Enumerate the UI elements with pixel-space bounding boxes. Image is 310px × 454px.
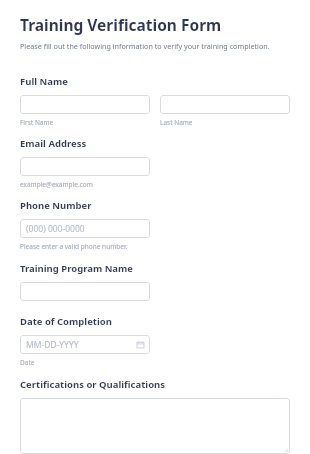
button[interactable] (20, 282, 150, 301)
staticText: Phone Number (20, 199, 92, 212)
staticText: Training Program Name (20, 262, 133, 275)
staticText: Last Name (160, 118, 193, 127)
button[interactable] (20, 398, 290, 454)
staticText: Please enter a valid phone number. (20, 242, 128, 251)
button[interactable]: MM-DD-YYYY (20, 335, 150, 354)
staticText: MM-DD-YYYY (26, 339, 79, 351)
staticText: Email Address (20, 137, 87, 150)
staticText: Please fill out the following informatio… (20, 41, 270, 51)
other: Pick date (137, 341, 144, 348)
staticText: Date of Completion (20, 315, 112, 328)
button[interactable] (160, 95, 290, 114)
staticText: Date (20, 358, 35, 367)
staticText: Training Verification Form (20, 14, 222, 35)
staticText: Certifications or Qualifications (20, 378, 166, 391)
staticText: example@example.com (20, 180, 93, 189)
button[interactable] (20, 95, 150, 114)
button[interactable]: (000) 000-0000 (20, 219, 150, 238)
staticText: (000) 000-0000 (26, 223, 85, 235)
staticText: First Name (20, 118, 54, 127)
button[interactable] (20, 157, 150, 176)
staticText: Full Name (20, 75, 68, 88)
